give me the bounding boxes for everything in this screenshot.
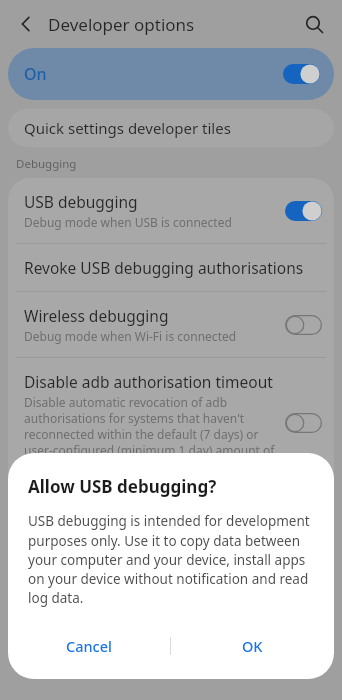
button[interactable]: USB debugging bbox=[8, 178, 334, 243]
button[interactable]: Revoke USB debugging authorisations bbox=[8, 244, 334, 291]
button[interactable]: Cancel bbox=[8, 625, 170, 667]
button[interactable]: Back bbox=[8, 6, 44, 42]
staticText: Cancel bbox=[66, 636, 112, 656]
staticText: Revoke USB debugging authorisations bbox=[24, 257, 304, 278]
staticText: OK bbox=[242, 636, 263, 656]
staticText: Allow AT commands over USB bbox=[24, 524, 192, 540]
staticText: 3GPP AT commands bbox=[24, 501, 170, 522]
staticText: Allow USB debugging? bbox=[28, 475, 217, 498]
staticText: Disable automatic revocation of adb auth… bbox=[24, 394, 275, 474]
staticText: Debugging bbox=[16, 156, 77, 172]
button[interactable]: Wireless debugging bbox=[8, 292, 334, 357]
staticText: Debug mode when Wi-Fi is connected bbox=[24, 328, 237, 344]
staticText: On bbox=[24, 63, 47, 85]
staticText: Debug mode when USB is connected bbox=[24, 214, 232, 230]
staticText: Quick settings developer tiles bbox=[24, 118, 231, 138]
button[interactable]: Quick settings developer tiles bbox=[8, 109, 334, 147]
staticText: Disable adb authorisation timeout bbox=[24, 371, 273, 392]
staticText: Developer options bbox=[48, 13, 195, 36]
staticText: Select mock location app bbox=[24, 567, 205, 588]
button[interactable]: Disable adb authorisation timeout bbox=[8, 358, 334, 487]
staticText: USB debugging is intended for developmen… bbox=[28, 512, 314, 607]
button[interactable]: OK bbox=[171, 625, 334, 667]
button[interactable]: On bbox=[8, 48, 334, 100]
staticText: USB debugging bbox=[24, 191, 138, 212]
button[interactable]: Search bbox=[296, 6, 332, 42]
staticText: Wireless debugging bbox=[24, 305, 169, 326]
button[interactable]: 3GPP AT commands bbox=[8, 488, 334, 553]
button[interactable]: Select mock location app bbox=[8, 554, 334, 601]
